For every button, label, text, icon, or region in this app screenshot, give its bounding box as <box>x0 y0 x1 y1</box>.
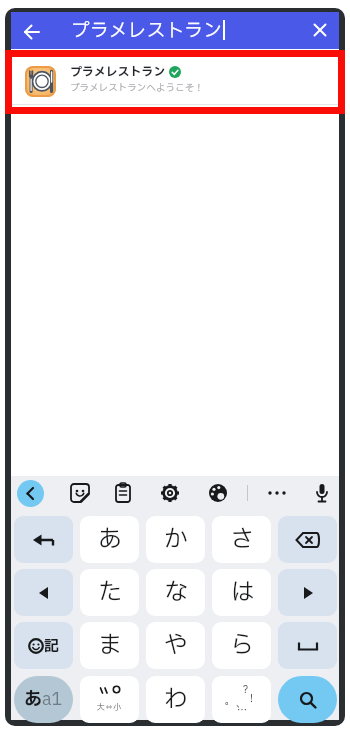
staticText: ! <box>250 691 253 706</box>
button[interactable] <box>278 622 337 669</box>
staticText: は <box>230 575 254 611</box>
staticText: あ <box>98 522 122 558</box>
staticText: わ <box>164 682 188 718</box>
button[interactable]: あ <box>80 516 139 563</box>
button[interactable]: た <box>80 569 139 616</box>
button[interactable]: か <box>146 516 205 563</box>
staticText: 大⇔小 <box>97 702 121 714</box>
button[interactable] <box>278 676 337 723</box>
button[interactable]: 大⇔小 <box>80 676 139 723</box>
staticText: な <box>164 575 188 611</box>
button[interactable] <box>278 569 337 616</box>
button[interactable] <box>278 516 337 563</box>
staticText: プラメレストランへようこそ！ <box>70 81 204 95</box>
button[interactable] <box>14 569 73 616</box>
button[interactable]: 記 <box>14 622 73 669</box>
staticText: さ <box>230 522 254 558</box>
button[interactable] <box>206 481 230 505</box>
button[interactable] <box>265 481 289 505</box>
button[interactable]: ま <box>80 622 139 669</box>
staticText: た <box>98 575 122 611</box>
button[interactable] <box>68 481 92 505</box>
button[interactable] <box>21 21 47 47</box>
staticText: プラメレストラン <box>71 17 223 45</box>
button[interactable] <box>17 480 44 507</box>
button[interactable]: や <box>146 622 205 669</box>
button[interactable] <box>14 516 73 563</box>
button[interactable]: な <box>146 569 205 616</box>
button[interactable]: あ <box>14 676 73 723</box>
staticText: 記 <box>44 635 60 657</box>
staticText: ら <box>230 628 254 664</box>
button[interactable]: は <box>212 569 271 616</box>
staticText: … <box>237 703 247 718</box>
staticText: プラメレストラン <box>70 63 166 81</box>
button[interactable] <box>158 481 182 505</box>
staticText: a1 <box>42 687 63 712</box>
button[interactable] <box>111 481 135 505</box>
button[interactable] <box>310 481 334 505</box>
staticText: か <box>164 522 188 558</box>
staticText: 、 <box>236 696 246 711</box>
button[interactable] <box>308 18 332 42</box>
button[interactable]: わ <box>146 676 205 723</box>
staticText: や <box>164 628 188 664</box>
staticText: ? <box>243 682 248 697</box>
button[interactable]: さ <box>212 516 271 563</box>
button[interactable]: ? <box>212 676 271 723</box>
staticText: 。 <box>225 693 235 708</box>
button[interactable]: ら <box>212 622 271 669</box>
staticText: あ <box>24 686 42 713</box>
staticText: ま <box>98 628 122 664</box>
